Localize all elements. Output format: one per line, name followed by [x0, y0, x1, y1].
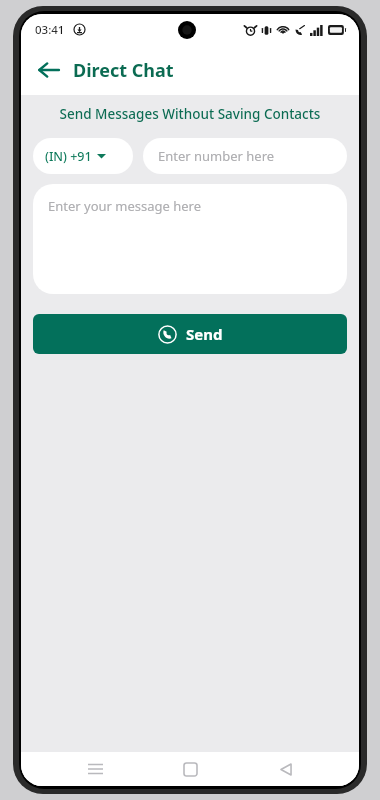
staticText: (IN) +91 [45, 148, 92, 165]
button[interactable]: Home [168, 752, 212, 786]
staticText: Enter your message here [48, 197, 202, 215]
staticText: Direct Chat [73, 58, 174, 83]
button[interactable]: (IN) +91 [33, 138, 133, 174]
staticText: Enter number here [158, 147, 275, 165]
button[interactable]: Send [33, 314, 347, 354]
button[interactable]: Enter number here [143, 138, 347, 174]
button[interactable]: Back [264, 752, 308, 786]
button[interactable]: Enter your message here [33, 184, 347, 294]
button[interactable]: Recent apps [73, 752, 117, 786]
staticText: 03:41 [35, 22, 65, 38]
staticText: Send Messages Without Saving Contacts [21, 105, 359, 123]
staticText: Send [186, 324, 223, 344]
button[interactable]: Back [29, 50, 69, 90]
